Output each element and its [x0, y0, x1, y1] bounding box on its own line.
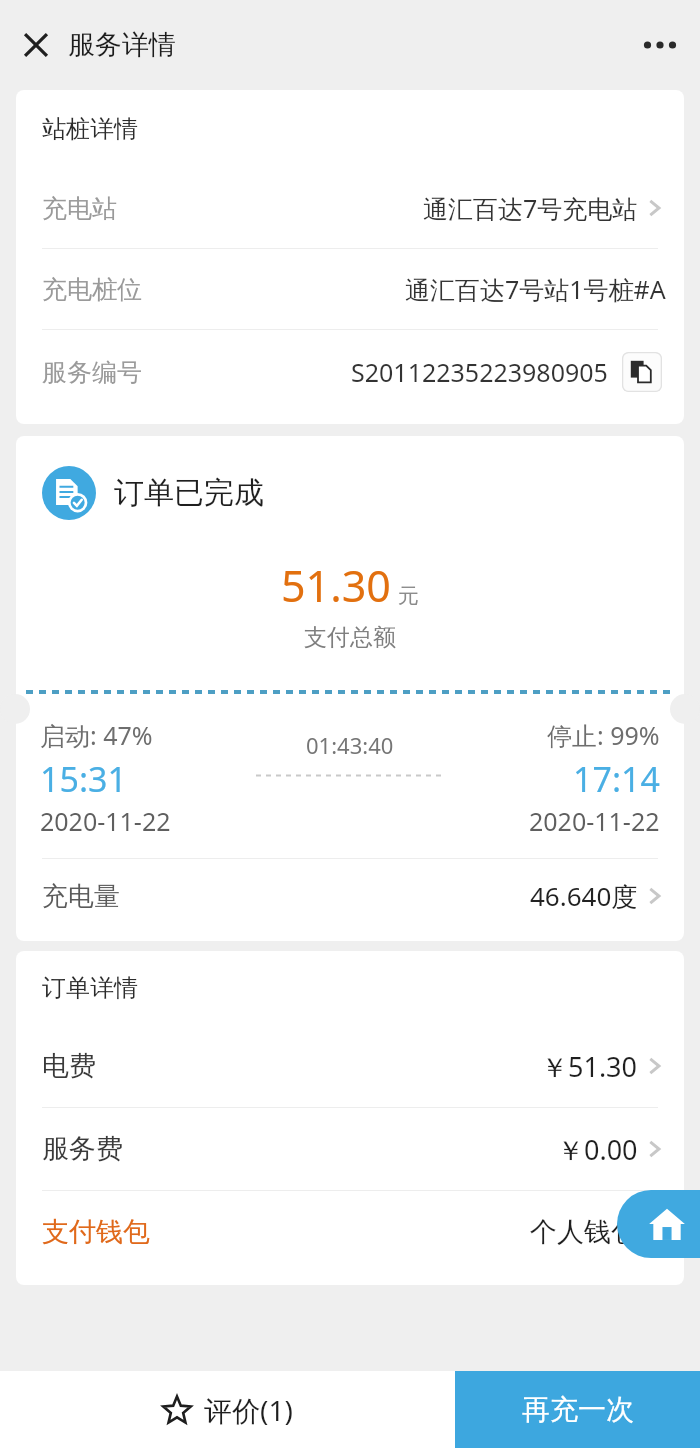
staticText: 通汇百达7号充电站	[423, 191, 638, 225]
button[interactable]: Copy service number	[622, 352, 662, 392]
button[interactable]: More options	[630, 15, 690, 75]
staticText: 服务详情	[68, 28, 176, 62]
staticText: 订单详情	[42, 973, 138, 1003]
button[interactable]: 充电站	[16, 168, 684, 248]
button[interactable]: Home	[617, 1190, 700, 1258]
button[interactable]: 服务编号	[16, 330, 684, 414]
button[interactable]: 评价(1)	[0, 1371, 455, 1448]
button[interactable]: 充电量	[16, 859, 684, 933]
button[interactable]: 服务费	[16, 1108, 684, 1190]
button[interactable]: 支付钱包	[16, 1191, 684, 1273]
staticText: 通汇百达7号站1号桩#A	[405, 272, 666, 306]
staticText: 停止: 99%	[547, 718, 660, 752]
staticText: 17:14	[573, 756, 660, 802]
button[interactable]: 再充一次	[455, 1371, 700, 1448]
staticText: 51.30	[281, 556, 391, 615]
staticText: 支付总额	[16, 623, 684, 652]
staticText: 评价(1)	[204, 1391, 293, 1429]
staticText: 元	[398, 583, 419, 609]
staticText: ￥0.00	[557, 1131, 638, 1168]
staticText: 15:31	[40, 756, 127, 802]
staticText: 订单已完成	[114, 474, 264, 512]
staticText: 服务编号	[42, 357, 142, 388]
staticText: 01:43:40	[306, 730, 394, 760]
staticText: 个人钱包	[530, 1215, 638, 1249]
button[interactable]: Close	[8, 17, 64, 73]
staticText: 充电站	[42, 193, 117, 224]
button[interactable]: 电费	[16, 1025, 684, 1107]
staticText: 46.640度	[530, 878, 638, 914]
staticText: 再充一次	[522, 1392, 634, 1427]
staticText: 2020-11-22	[40, 804, 171, 838]
staticText: 充电量	[42, 880, 120, 913]
staticText: 2020-11-22	[529, 804, 660, 838]
staticText: 服务费	[42, 1132, 123, 1166]
staticText: 站桩详情	[42, 114, 138, 144]
staticText: 支付钱包	[42, 1215, 150, 1249]
staticText: S20112235223980905	[351, 355, 608, 389]
staticText: 启动: 47%	[40, 718, 153, 752]
staticText: ￥51.30	[541, 1048, 638, 1085]
button[interactable]: 充电桩位	[16, 249, 684, 329]
staticText: 充电桩位	[42, 274, 142, 305]
staticText: 电费	[42, 1049, 96, 1083]
